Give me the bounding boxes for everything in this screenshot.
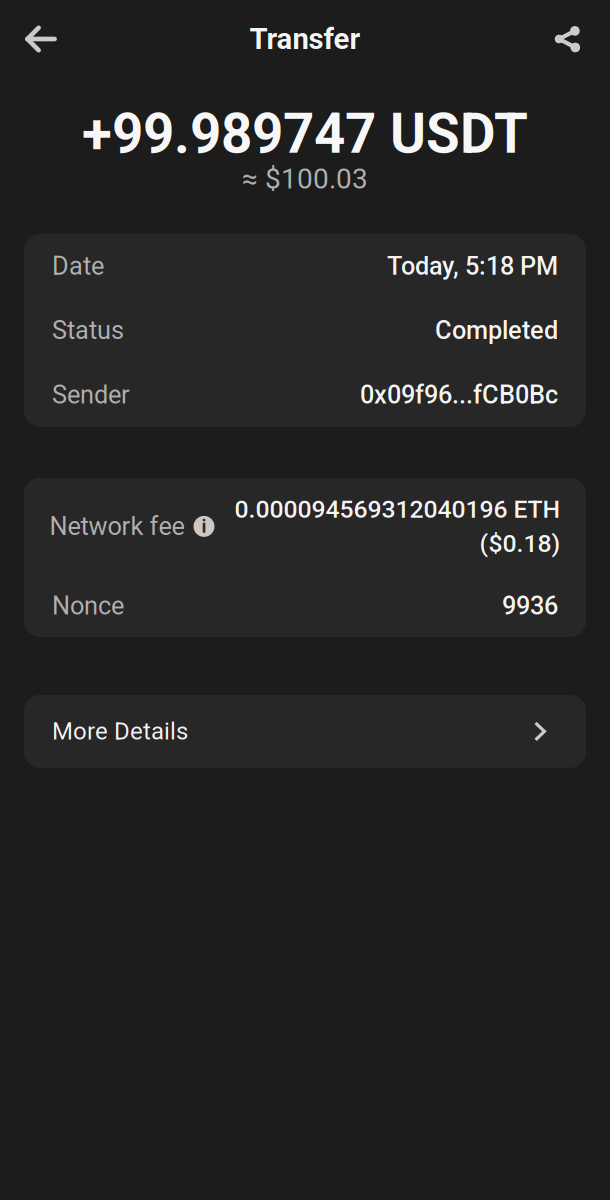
staticText: ≈ $100.03 <box>242 163 368 195</box>
staticText: Transfer <box>249 22 360 56</box>
staticText: 0.000094569312040196 ETH <box>234 495 560 524</box>
staticText: Sender <box>52 380 130 410</box>
button[interactable]: More Details <box>0 695 610 768</box>
staticText: 9936 <box>502 591 558 621</box>
staticText: More Details <box>52 717 188 745</box>
staticText: 0x09f96...fCB0Bc <box>360 380 558 410</box>
button[interactable]: Back <box>11 9 71 69</box>
staticText: Nonce <box>52 591 124 621</box>
staticText: Network fee <box>49 512 184 541</box>
staticText: Completed <box>435 316 558 345</box>
staticText: i <box>201 515 206 537</box>
staticText: Status <box>52 316 124 345</box>
staticText: ($0.18) <box>479 529 560 558</box>
button[interactable]: Share <box>539 9 599 69</box>
staticText: +99.989747 USDT <box>82 102 528 166</box>
staticText: Today, 5:18 PM <box>387 251 558 281</box>
staticText: Date <box>52 251 104 281</box>
